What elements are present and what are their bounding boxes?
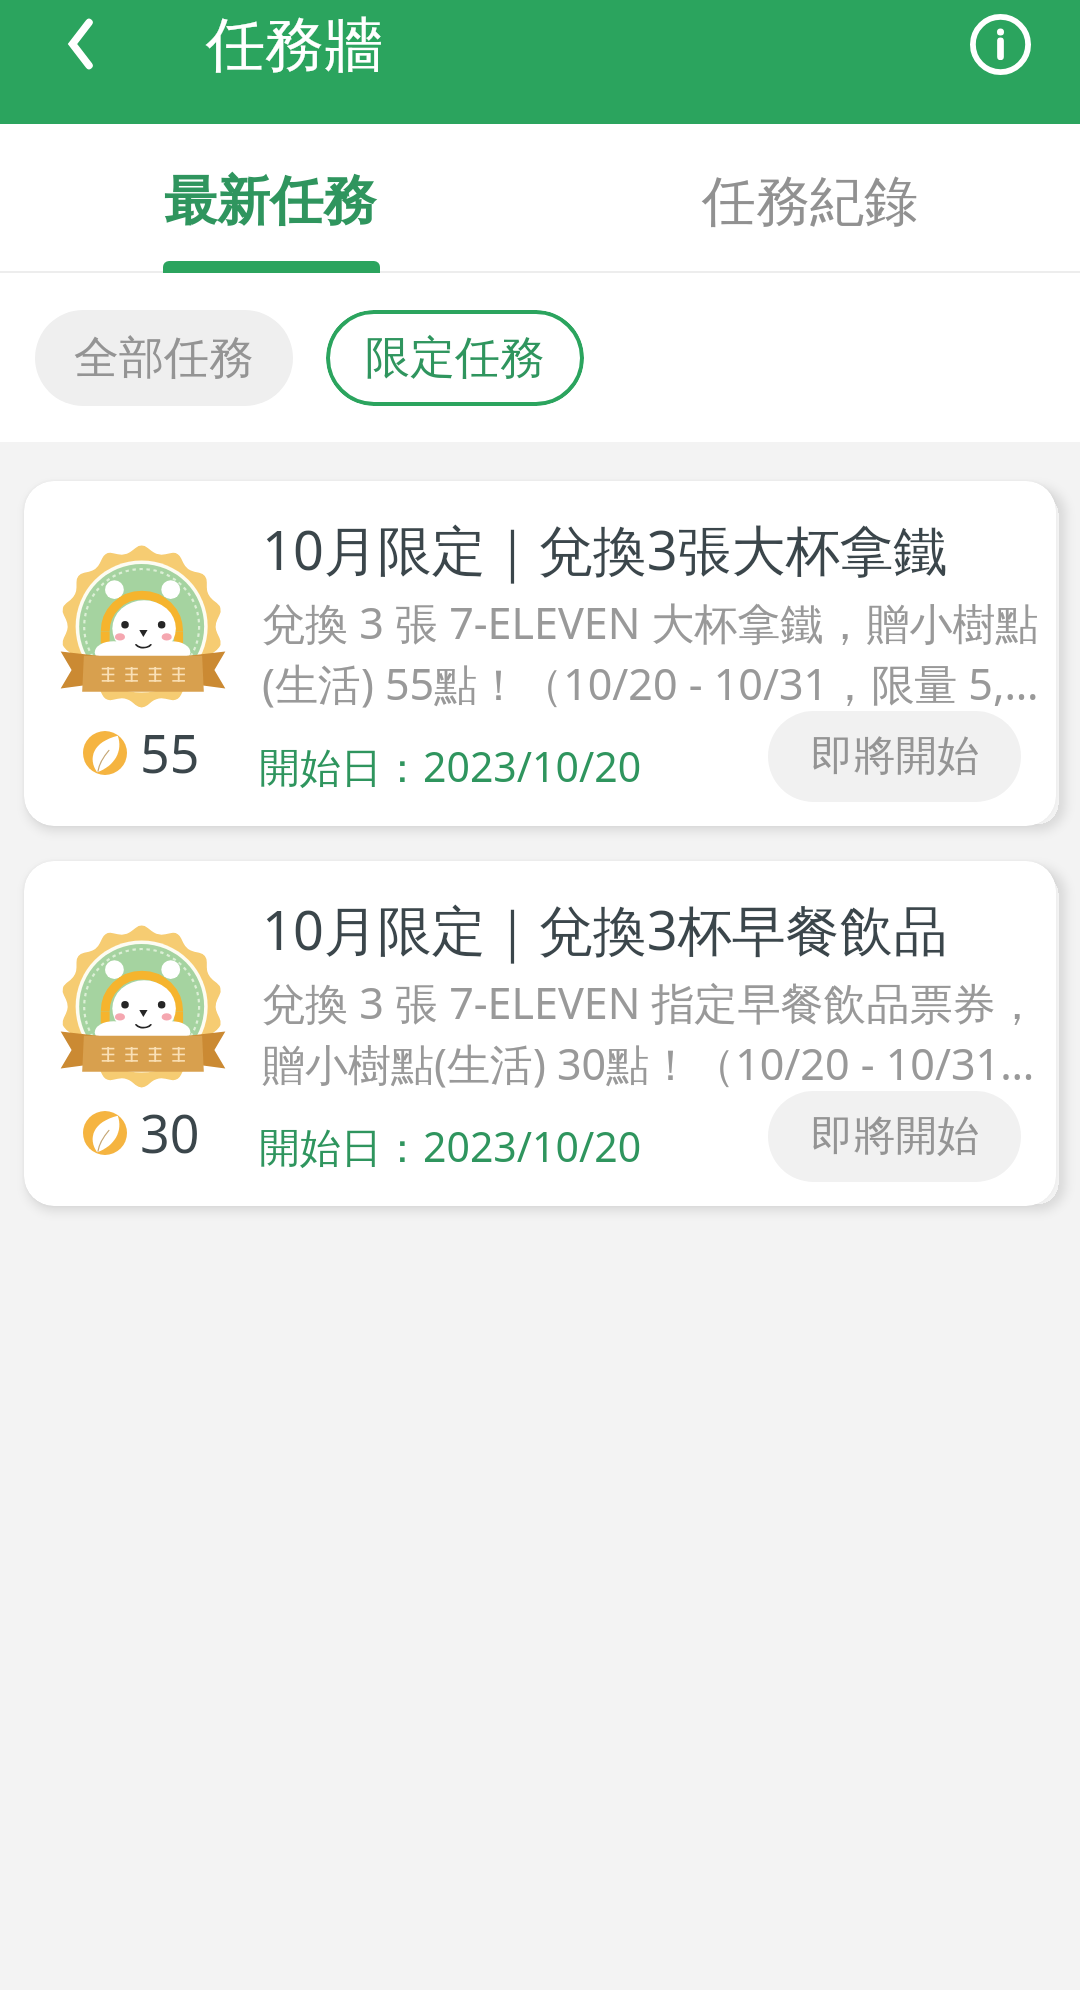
- staticText: 最新任務: [164, 168, 376, 235]
- button[interactable]: 全部任務: [35, 310, 293, 406]
- button[interactable]: 限定任務: [326, 310, 584, 406]
- staticText: 30: [140, 1097, 200, 1168]
- staticText: 55: [140, 717, 200, 788]
- button[interactable]: Information: [950, 0, 1050, 94]
- staticText: 任務牆: [206, 8, 383, 82]
- staticText: 開始日：2023/10/20: [259, 1118, 642, 1174]
- staticText: 全部任務: [74, 330, 254, 387]
- staticText: 10月限定｜兌換3杯早餐飲品: [262, 892, 948, 966]
- staticText: 兌換 3 張 7-ELEVEN 大杯拿鐵，贈小樹點(生活) 55點！（10/20…: [262, 593, 1052, 712]
- button[interactable]: 任務紀錄: [540, 124, 1080, 273]
- button[interactable]: Back: [30, 0, 130, 94]
- staticText: 即將開始: [811, 1110, 979, 1163]
- staticText: 任務紀錄: [702, 168, 918, 236]
- button[interactable]: 55: [24, 481, 1056, 826]
- staticText: 開始日：2023/10/20: [259, 738, 642, 794]
- button[interactable]: 30: [24, 861, 1056, 1206]
- button[interactable]: 最新任務: [0, 124, 540, 273]
- staticText: 限定任務: [365, 330, 545, 387]
- button[interactable]: 即將開始: [768, 1091, 1021, 1182]
- staticText: 即將開始: [811, 730, 979, 783]
- staticText: 10月限定｜兌換3張大杯拿鐵: [262, 512, 948, 586]
- staticText: 兌換 3 張 7-ELEVEN 指定早餐飲品票券，贈小樹點(生活) 30點！（1…: [262, 973, 1052, 1092]
- button[interactable]: 即將開始: [768, 711, 1021, 802]
